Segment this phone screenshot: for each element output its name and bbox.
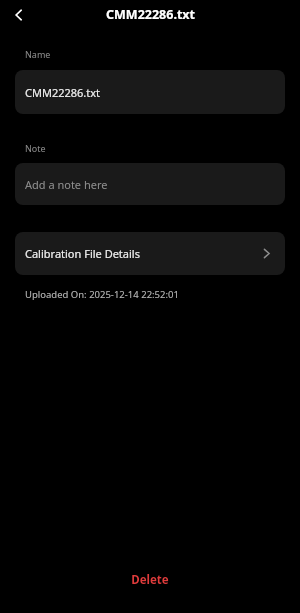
button[interactable]: Back — [6, 2, 32, 28]
button[interactable]: CMM22286.txt — [15, 70, 285, 114]
staticText: Add a note here — [25, 177, 108, 192]
button[interactable]: Add a note here — [15, 163, 285, 205]
staticText: CMM22286.txt — [106, 6, 195, 23]
button[interactable]: Calibration File Details — [15, 232, 285, 275]
staticText: Note — [25, 142, 46, 154]
staticText: Uploaded On: 2025-12-14 22:52:01 — [25, 288, 179, 301]
button[interactable]: Delete — [90, 564, 210, 596]
staticText: Calibration File Details — [25, 246, 140, 261]
staticText: Delete — [131, 572, 169, 588]
staticText: CMM22286.txt — [25, 85, 101, 100]
staticText: Name — [25, 48, 51, 60]
